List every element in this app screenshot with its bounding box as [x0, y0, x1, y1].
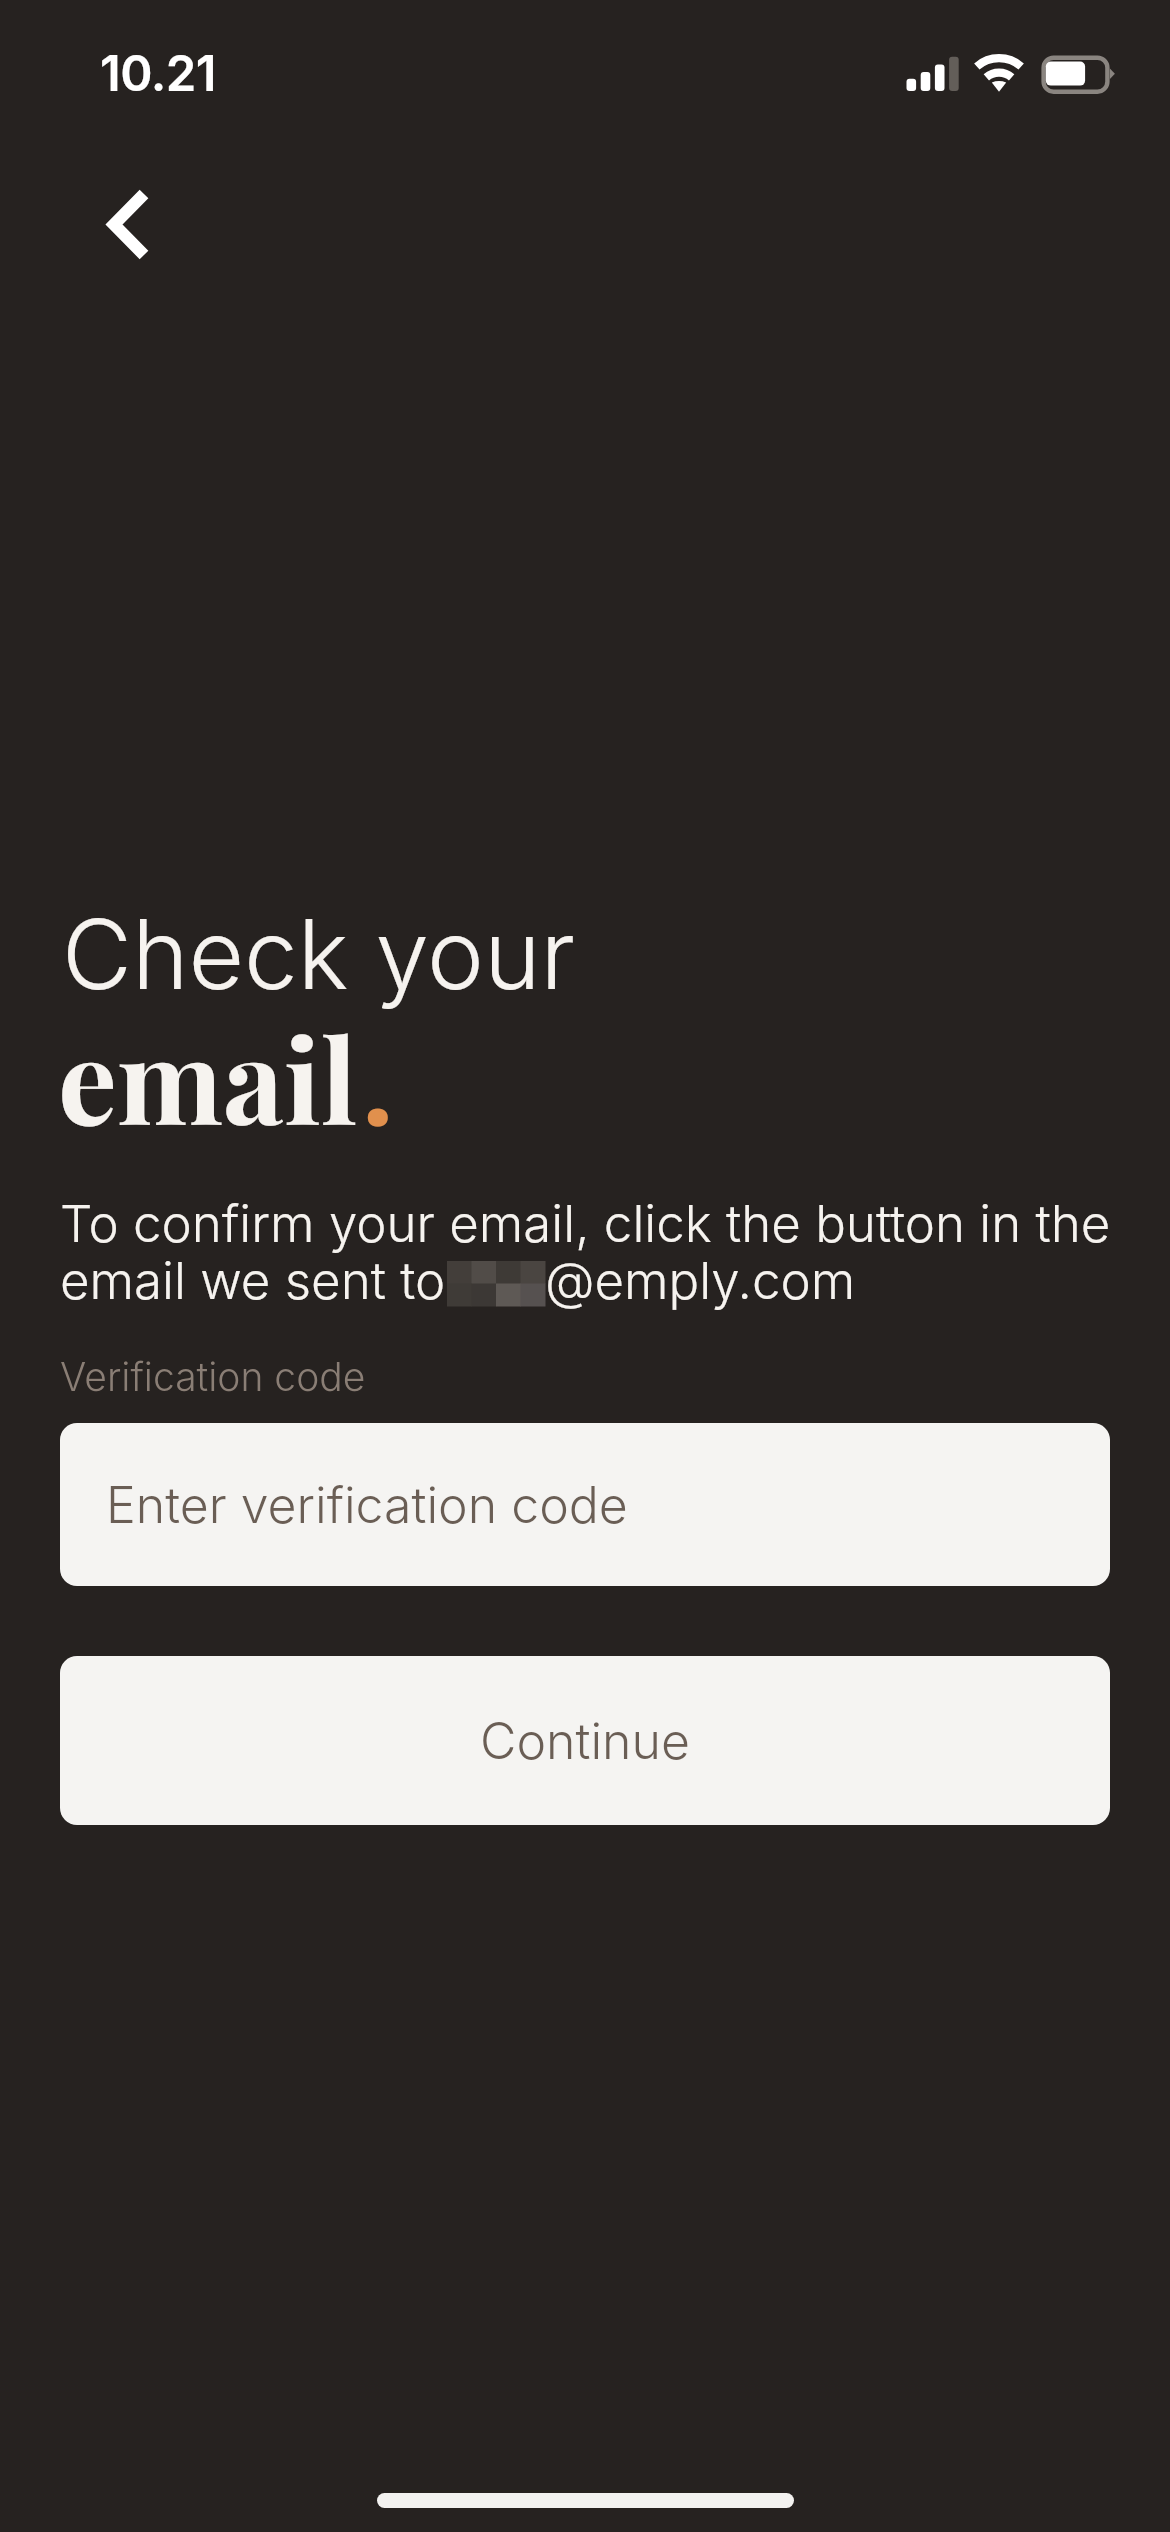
- button[interactable]: Back: [96, 180, 168, 270]
- button[interactable]: Continue: [60, 1656, 1110, 1825]
- staticText: Enter verification code: [106, 1475, 628, 1535]
- staticText: Verification code: [60, 1353, 366, 1400]
- staticText: To confirm your email, click the button …: [60, 1193, 1111, 1255]
- staticText: email we sent to: [60, 1250, 446, 1312]
- staticText: Continue: [480, 1711, 690, 1771]
- button[interactable]: Enter verification code: [60, 1423, 1110, 1586]
- staticText: @emply.com: [545, 1250, 856, 1312]
- staticText: 10.21: [100, 44, 217, 103]
- staticText: Check your: [62, 896, 575, 1012]
